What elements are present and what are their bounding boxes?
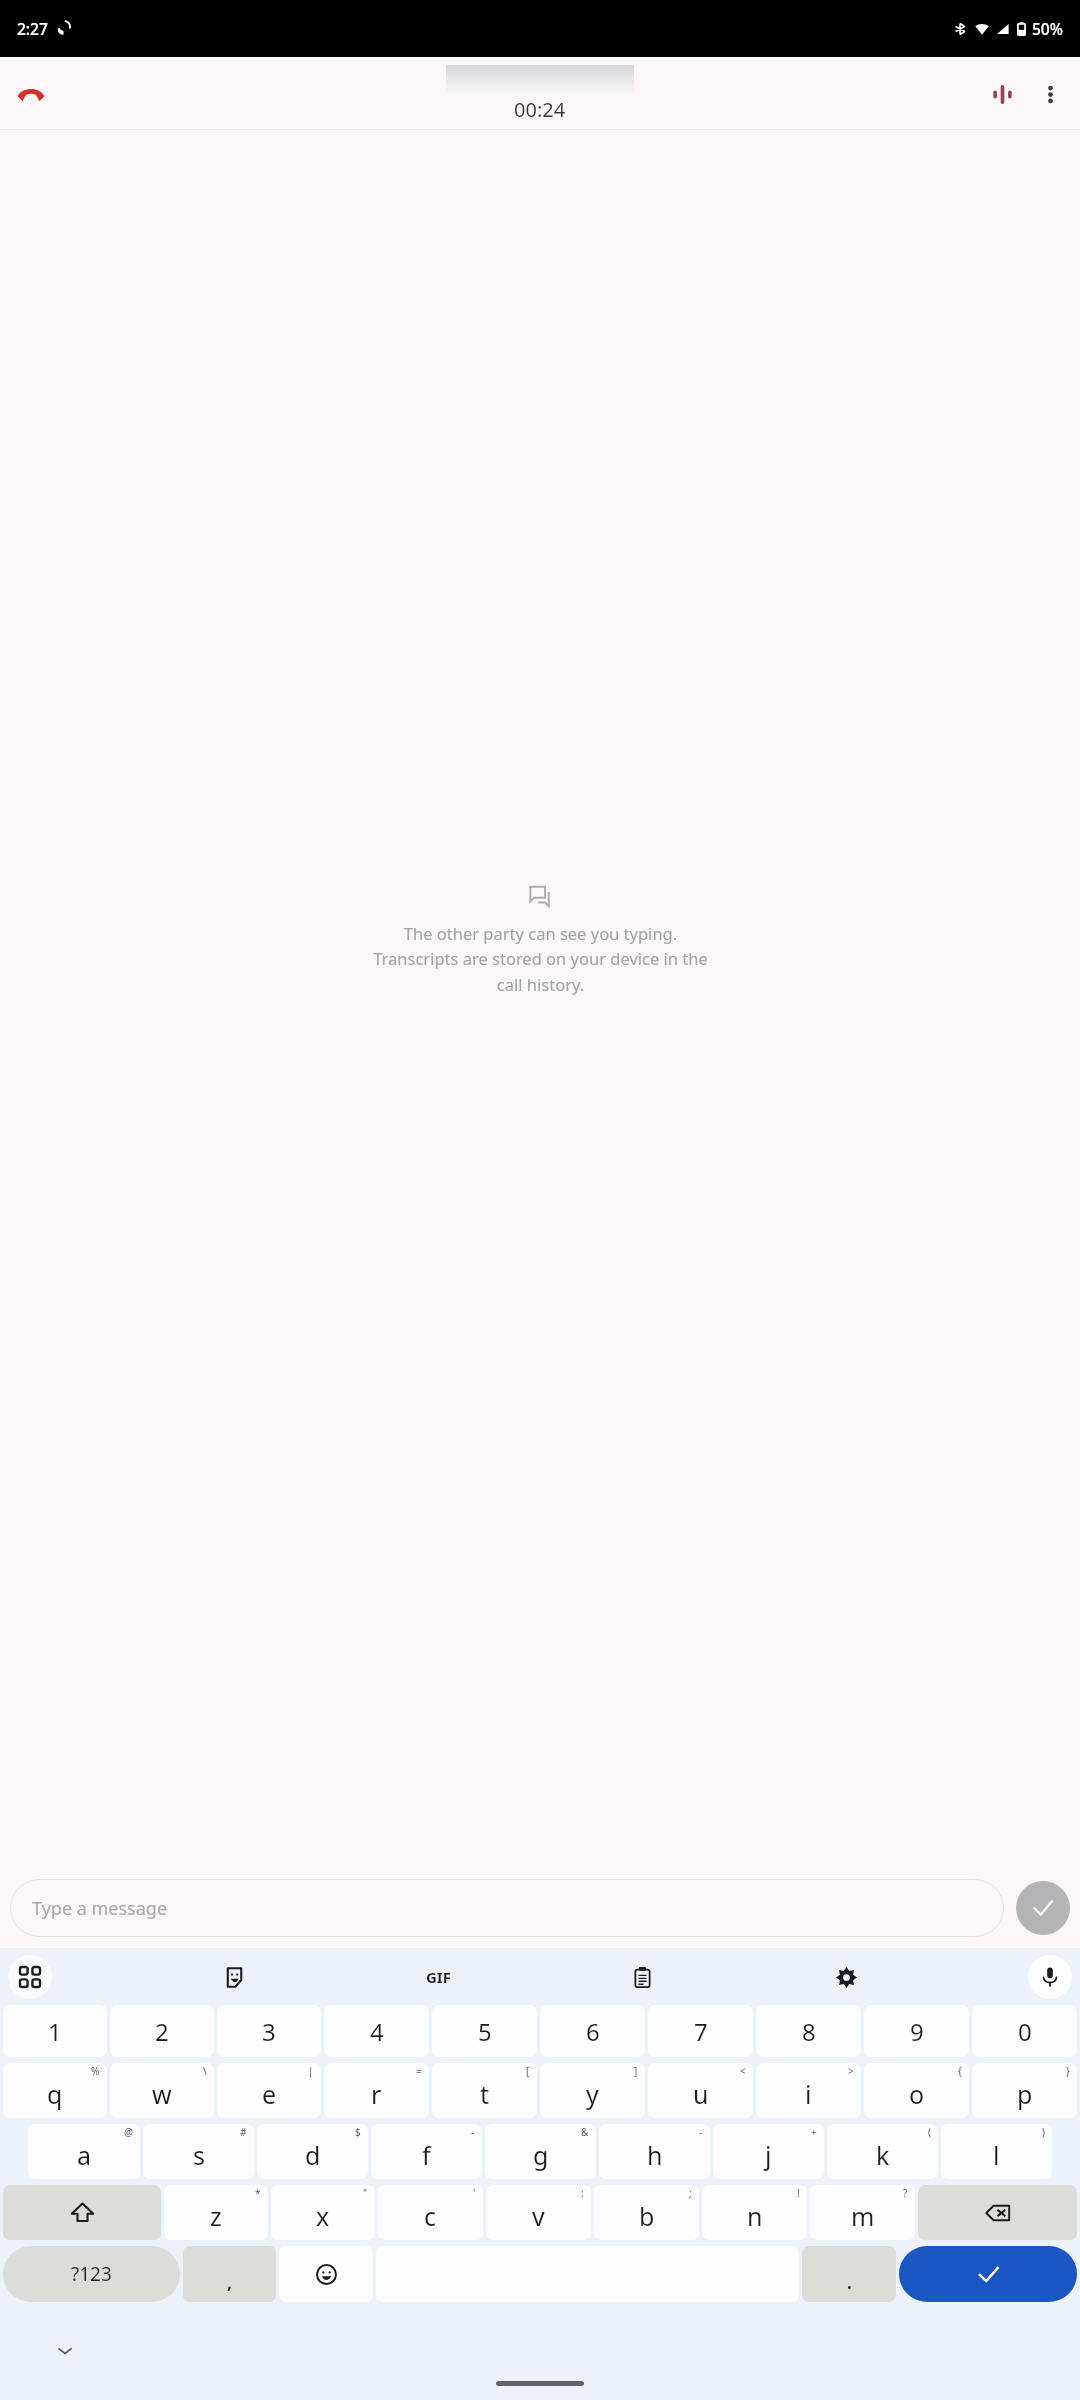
- button[interactable]: <: [648, 2063, 753, 2118]
- staticText: :: [581, 2186, 584, 2200]
- button[interactable]: Emoji: [279, 2246, 373, 2302]
- button[interactable]: [: [432, 2063, 537, 2118]
- staticText: f: [422, 2138, 431, 2172]
- button[interactable]: +: [713, 2124, 824, 2179]
- staticText: 4: [370, 2015, 384, 2048]
- button[interactable]: Type a message: [10, 1879, 1004, 1937]
- button[interactable]: End call: [7, 70, 55, 118]
- button[interactable]: \: [110, 2063, 214, 2118]
- button[interactable]: 0: [972, 2005, 1077, 2057]
- staticText: u: [693, 2077, 709, 2111]
- staticText: 8: [802, 2015, 816, 2048]
- button[interactable]: #: [143, 2124, 254, 2179]
- staticText: >: [848, 2064, 854, 2078]
- staticText: ?: [903, 2186, 908, 2200]
- staticText: q: [47, 2077, 63, 2111]
- button[interactable]: 2: [110, 2005, 214, 2057]
- staticText: @: [124, 2125, 133, 2139]
- button[interactable]: .: [802, 2246, 896, 2302]
- button[interactable]: 1: [3, 2005, 107, 2057]
- staticText: l: [993, 2138, 1000, 2172]
- button[interactable]: *: [164, 2185, 268, 2240]
- button[interactable]: !: [702, 2185, 807, 2240]
- button[interactable]: }: [972, 2063, 1077, 2118]
- button[interactable]: Stickers: [212, 1955, 256, 1999]
- button[interactable]: -: [371, 2124, 482, 2179]
- button[interactable]: Backspace: [918, 2185, 1077, 2240]
- staticText: n: [747, 2199, 763, 2233]
- staticText: z: [210, 2199, 222, 2233]
- staticText: p: [1017, 2077, 1033, 2111]
- staticText: o: [909, 2077, 925, 2111]
- staticText: ]: [634, 2064, 638, 2078]
- staticText: [: [526, 2064, 530, 2078]
- button[interactable]: 4: [324, 2005, 429, 2057]
- button[interactable]: ?123: [3, 2246, 180, 2302]
- button[interactable]: =: [324, 2063, 429, 2118]
- staticText: ': [473, 2186, 476, 2200]
- button[interactable]: 8: [756, 2005, 861, 2057]
- staticText: ): [1042, 2125, 1045, 2139]
- button[interactable]: ": [271, 2185, 375, 2240]
- button[interactable]: 7: [648, 2005, 753, 2057]
- button[interactable]: ?: [810, 2185, 915, 2240]
- button[interactable]: %: [3, 2063, 107, 2118]
- button[interactable]: 9: [864, 2005, 969, 2057]
- button[interactable]: 6: [540, 2005, 645, 2057]
- button[interactable]: Audio waveform: [978, 70, 1026, 118]
- button[interactable]: GIF: [416, 1955, 460, 1999]
- staticText: k: [876, 2138, 890, 2172]
- staticText: ;: [689, 2186, 692, 2200]
- staticText: 7: [694, 2015, 708, 2048]
- button[interactable]: :: [486, 2185, 591, 2240]
- button[interactable]: ): [941, 2124, 1052, 2179]
- staticText: $: [355, 2125, 361, 2139]
- staticText: ,: [227, 2271, 232, 2294]
- staticText: <: [740, 2064, 746, 2078]
- staticText: r: [371, 2077, 382, 2111]
- staticText: 6: [586, 2015, 600, 2048]
- staticText: m: [851, 2199, 875, 2233]
- button[interactable]: ': [378, 2185, 483, 2240]
- button[interactable]: Hide keyboard: [45, 2331, 85, 2371]
- button[interactable]: $: [257, 2124, 368, 2179]
- staticText: %: [91, 2064, 100, 2078]
- staticText: w: [152, 2077, 172, 2111]
- button[interactable]: |: [217, 2063, 321, 2118]
- button[interactable]: {: [864, 2063, 969, 2118]
- staticText: 3: [262, 2015, 276, 2048]
- button[interactable]: @: [28, 2124, 140, 2179]
- staticText: 00:24: [514, 96, 566, 123]
- button[interactable]: Voice input: [1028, 1955, 1072, 1999]
- button[interactable]: Send: [1016, 1881, 1070, 1935]
- button[interactable]: More options: [1026, 70, 1074, 118]
- staticText: }: [1066, 2064, 1070, 2078]
- staticText: t: [480, 2077, 490, 2111]
- staticText: b: [639, 2199, 655, 2233]
- button[interactable]: Shift: [3, 2185, 161, 2240]
- button[interactable]: >: [756, 2063, 861, 2118]
- button[interactable]: ]: [540, 2063, 645, 2118]
- button[interactable]: 5: [432, 2005, 537, 2057]
- button[interactable]: (: [827, 2124, 938, 2179]
- button[interactable]: Enter: [899, 2246, 1077, 2302]
- staticText: +: [811, 2125, 817, 2139]
- button[interactable]: 3: [217, 2005, 321, 2057]
- button[interactable]: ;: [594, 2185, 699, 2240]
- staticText: &: [581, 2125, 589, 2139]
- button[interactable]: ,: [183, 2246, 276, 2302]
- staticText: c: [424, 2199, 437, 2233]
- button[interactable]: &: [485, 2124, 596, 2179]
- staticText: !: [797, 2186, 800, 2200]
- staticText: GIF: [426, 1967, 451, 1987]
- button[interactable]: -: [599, 2124, 710, 2179]
- staticText: .: [847, 2271, 852, 2294]
- button[interactable]: Clipboard: [620, 1955, 664, 1999]
- button[interactable]: Settings: [824, 1955, 868, 1999]
- staticText: v: [532, 2199, 545, 2233]
- staticText: 9: [910, 2015, 924, 2048]
- staticText: |: [308, 2064, 314, 2078]
- button[interactable]: Switch keyboard: [8, 1955, 52, 1999]
- staticText: s: [193, 2138, 205, 2172]
